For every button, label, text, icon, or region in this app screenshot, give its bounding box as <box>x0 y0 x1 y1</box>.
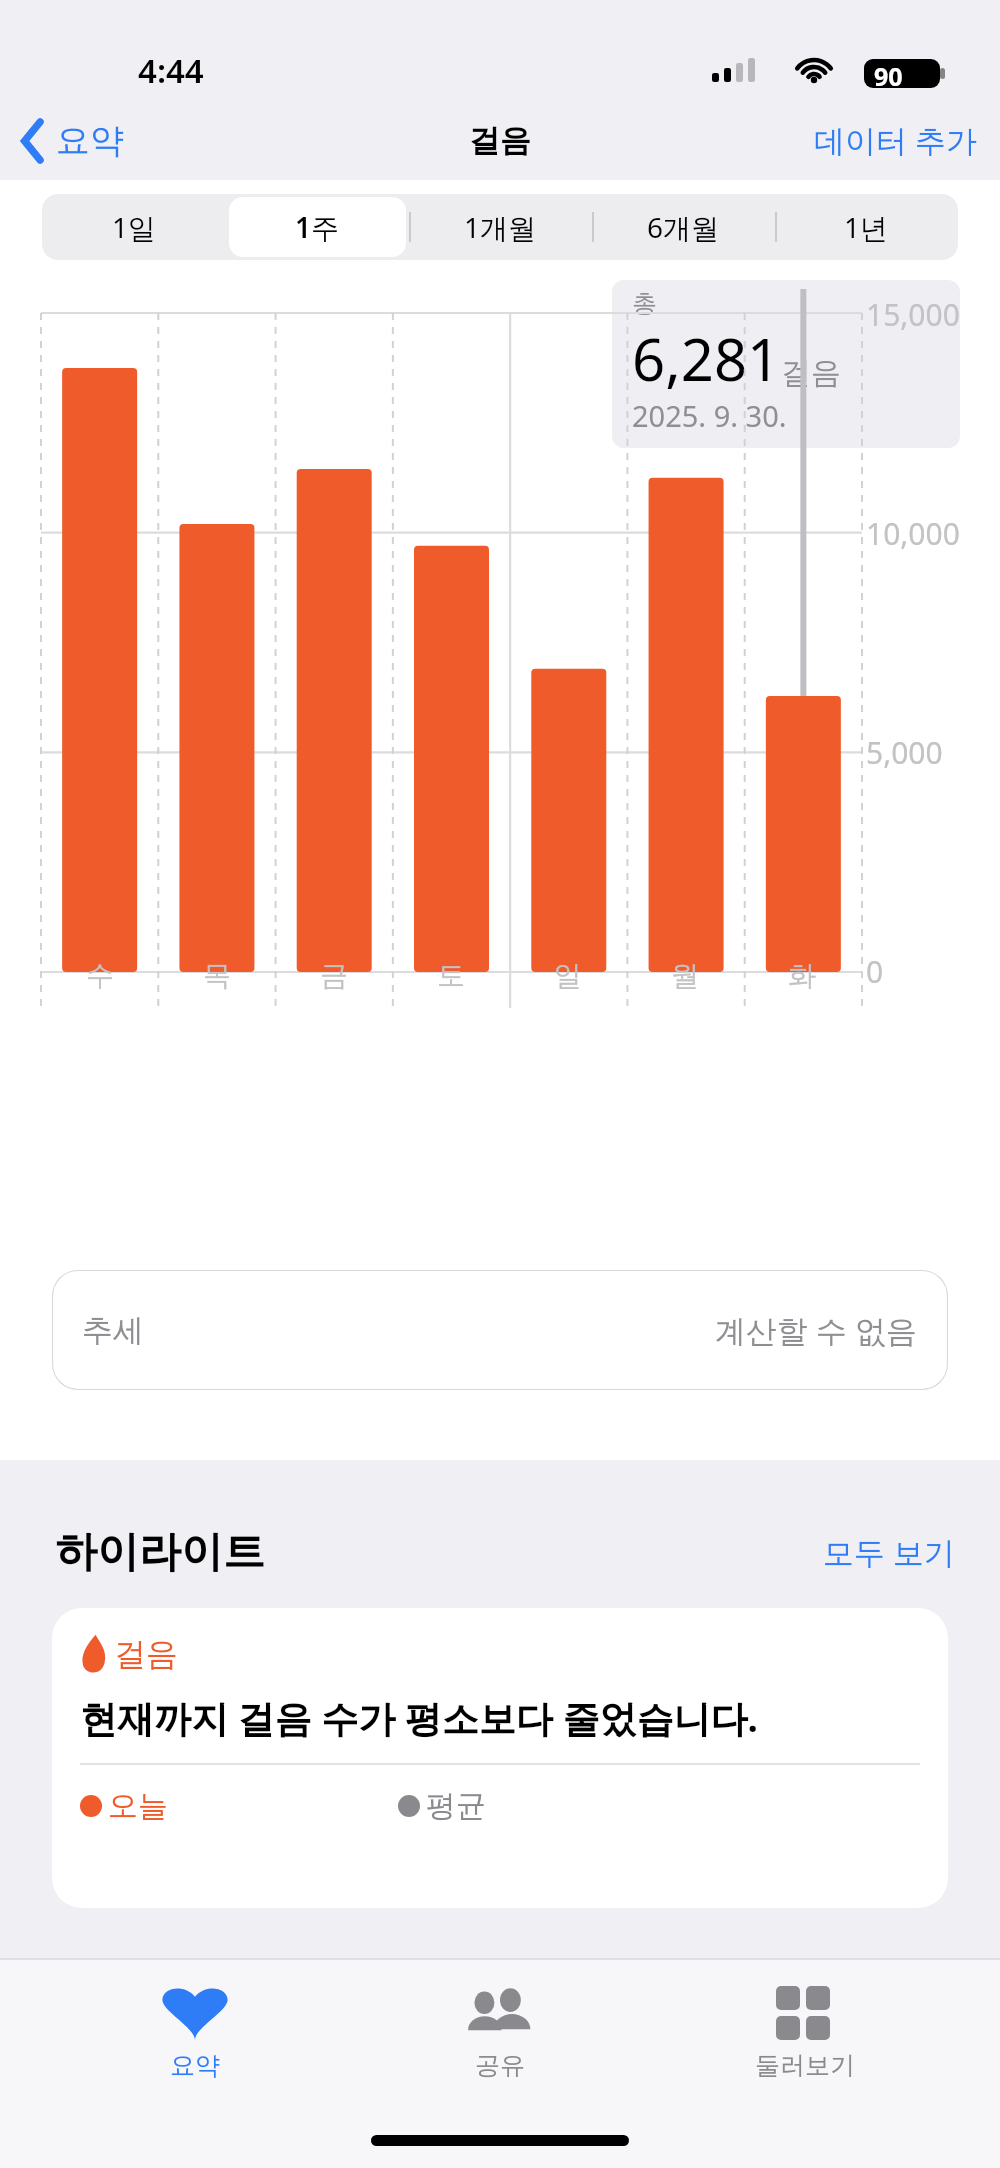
staticText: 요약 <box>170 2050 220 2081</box>
staticText: 걸음 <box>114 1634 178 1674</box>
staticText: 6,281 <box>632 319 781 398</box>
button[interactable]: 둘러보기 <box>695 1980 915 2087</box>
staticText: 4:44 <box>138 48 204 93</box>
staticText: 화 <box>788 958 816 993</box>
staticText: 수 <box>86 958 114 993</box>
staticText: 일 <box>554 958 582 993</box>
staticText: 평균 <box>426 1787 486 1825</box>
button[interactable]: 데이터 추가 <box>792 109 1000 171</box>
staticText: 6개월 <box>647 208 720 246</box>
staticText: 15,000 <box>866 294 960 335</box>
staticText: 월 <box>671 958 699 993</box>
staticText: 2025. 9. 30. <box>632 396 787 435</box>
staticText: 오늘 <box>108 1787 168 1825</box>
staticText: 걸음 <box>469 121 531 160</box>
staticText: 10,000 <box>866 513 960 554</box>
staticText: 계산할 수 없음 <box>715 1309 918 1351</box>
other: 공유 <box>460 1986 540 2040</box>
staticText: 현재까지 걸음 수가 평소보다 줄었습니다. <box>80 1692 758 1743</box>
staticText: 요약 <box>56 119 124 162</box>
staticText: 0 <box>866 951 884 992</box>
button[interactable]: 공유 <box>390 1980 610 2087</box>
button[interactable]: 요약 <box>85 1980 305 2087</box>
button[interactable]: 1주 <box>226 194 409 260</box>
button[interactable]: 1일 <box>42 194 226 260</box>
staticText: 데이터 추가 <box>814 119 978 161</box>
staticText: 공유 <box>475 2050 525 2081</box>
staticText: 추세 <box>82 1311 144 1350</box>
staticText: 하이라이트 <box>55 1526 265 1579</box>
button[interactable]: 1개월 <box>409 194 592 260</box>
button[interactable]: 1년 <box>775 194 958 260</box>
button[interactable]: 추세 <box>52 1270 948 1390</box>
staticText: 1년 <box>844 208 889 246</box>
button[interactable]: 모두 보기 <box>779 1523 1000 1581</box>
staticText: 금 <box>320 958 348 993</box>
staticText: 5,000 <box>866 732 943 773</box>
staticText: 1일 <box>112 208 157 246</box>
button[interactable]: 걸음 <box>52 1608 948 1908</box>
button[interactable]: 6개월 <box>592 194 775 260</box>
staticText: 걸음 <box>781 354 841 392</box>
staticText: 총 <box>632 288 657 319</box>
button[interactable]: 요약 <box>0 111 136 170</box>
staticText: 모두 보기 <box>823 1531 956 1573</box>
staticText: 토 <box>437 958 465 993</box>
staticText: 목 <box>203 958 231 993</box>
other: 요약 <box>161 1986 229 2040</box>
other: 둘러보기 <box>776 1986 834 2040</box>
staticText: 둘러보기 <box>755 2050 855 2081</box>
staticText: 90 <box>874 59 903 93</box>
staticText: 1개월 <box>464 208 537 246</box>
staticText: 1주 <box>295 208 340 246</box>
